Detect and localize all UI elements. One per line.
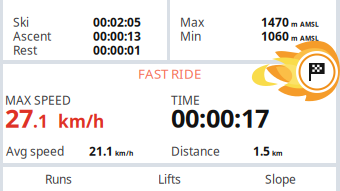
- staticText: 00:00:17: [171, 101, 269, 135]
- button[interactable]: Lifts: [114, 167, 225, 191]
- staticText: m AMSL: [289, 34, 319, 42]
- staticText: Avg speed: [6, 143, 64, 159]
- staticText: Min: [180, 28, 201, 44]
- staticText: .1: [33, 110, 48, 133]
- staticText: 1.5: [253, 143, 270, 159]
- staticText: 27: [5, 101, 33, 135]
- staticText: Distance: [171, 143, 220, 159]
- staticText: km: [270, 149, 283, 157]
- staticText: 00:02:05: [93, 14, 141, 30]
- staticText: km/h: [113, 149, 133, 157]
- staticText: m AMSL: [289, 20, 319, 28]
- button[interactable]: Runs: [3, 167, 114, 191]
- staticText: Max: [180, 14, 204, 30]
- button[interactable]: Slope: [225, 167, 336, 191]
- staticText: 21.1: [89, 143, 113, 159]
- staticText: 1470: [261, 14, 289, 30]
- staticText: 00:00:01: [93, 42, 141, 58]
- staticText: Lifts: [158, 171, 181, 187]
- staticText: Slope: [265, 171, 296, 187]
- staticText: Ski: [13, 14, 29, 30]
- staticText: Rest: [13, 42, 37, 58]
- staticText: 00:00:13: [93, 28, 141, 44]
- staticText: 1060: [261, 28, 289, 44]
- staticText: TIME: [171, 92, 200, 108]
- staticText: Runs: [45, 171, 72, 187]
- staticText: Ascent: [13, 28, 51, 44]
- staticText: FAST RIDE: [138, 65, 201, 82]
- staticText: km/h: [48, 110, 104, 133]
- staticText: MAX SPEED: [5, 92, 71, 108]
